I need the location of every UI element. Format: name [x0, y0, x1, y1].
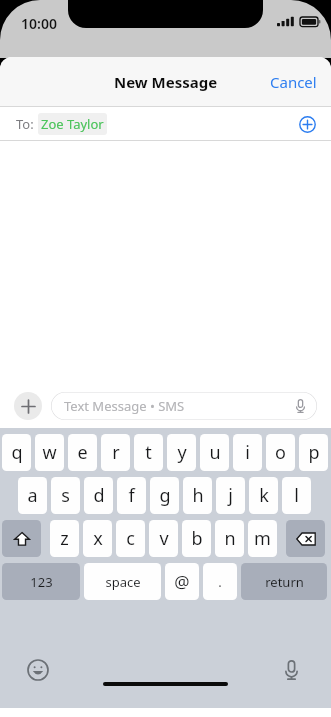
button[interactable]: . — [203, 563, 237, 600]
staticText: n — [224, 526, 236, 551]
staticText: q — [11, 440, 23, 465]
staticText: Cancel — [270, 72, 317, 92]
staticText: p — [308, 440, 320, 465]
button[interactable]: y — [167, 434, 196, 471]
button[interactable]: Backspace — [286, 520, 325, 557]
staticText: space — [105, 573, 141, 591]
staticText: 123 — [30, 573, 53, 591]
button[interactable]: q — [2, 434, 31, 471]
staticText: e — [77, 440, 88, 465]
button[interactable]: Zoe Taylor — [38, 113, 107, 135]
button[interactable]: Add contact — [292, 109, 322, 139]
staticText: Zoe Taylor — [41, 115, 104, 133]
staticText: r — [112, 440, 120, 465]
staticText: h — [192, 483, 204, 508]
staticText: i — [245, 440, 250, 465]
button[interactable]: @ — [165, 563, 199, 600]
staticText: . — [218, 573, 222, 591]
button[interactable]: Emoji — [24, 656, 52, 684]
button[interactable]: f — [117, 477, 146, 514]
staticText: t — [145, 440, 152, 465]
staticText: l — [294, 483, 299, 508]
staticText: New Message — [114, 72, 218, 92]
button[interactable]: Attach — [14, 392, 42, 420]
staticText: m — [254, 526, 271, 551]
button[interactable]: t — [134, 434, 163, 471]
staticText: u — [209, 440, 221, 465]
staticText: @ — [174, 570, 190, 593]
button[interactable]: Voice input — [277, 656, 305, 684]
button[interactable]: space — [84, 563, 161, 600]
staticText: z — [60, 526, 69, 551]
staticText: return — [265, 573, 304, 591]
button[interactable]: Shift — [2, 520, 41, 557]
staticText: c — [126, 526, 135, 551]
staticText: d — [93, 483, 105, 508]
button[interactable]: i — [233, 434, 262, 471]
staticText: j — [228, 483, 233, 508]
button[interactable]: u — [200, 434, 229, 471]
button[interactable]: 123 — [2, 563, 80, 600]
staticText: k — [259, 483, 269, 508]
staticText: 10:00 — [21, 14, 57, 33]
button[interactable]: r — [101, 434, 130, 471]
button[interactable]: Text Message • SMS — [51, 392, 317, 420]
staticText: v — [159, 526, 169, 551]
button[interactable]: k — [249, 477, 278, 514]
staticText: f — [128, 483, 135, 508]
button[interactable]: b — [182, 520, 211, 557]
button[interactable]: z — [50, 520, 79, 557]
button[interactable]: m — [248, 520, 277, 557]
staticText: s — [61, 483, 70, 508]
button[interactable]: c — [116, 520, 145, 557]
button[interactable]: Cancel — [256, 64, 331, 100]
button[interactable]: s — [51, 477, 80, 514]
staticText: b — [191, 526, 203, 551]
button[interactable]: n — [215, 520, 244, 557]
staticText: To: — [16, 115, 34, 133]
button[interactable]: x — [83, 520, 112, 557]
button[interactable]: h — [183, 477, 212, 514]
staticText: w — [42, 440, 57, 465]
button[interactable]: v — [149, 520, 178, 557]
button[interactable]: return — [241, 563, 327, 600]
button[interactable]: w — [35, 434, 64, 471]
button[interactable]: l — [282, 477, 311, 514]
button[interactable]: g — [150, 477, 179, 514]
staticText: a — [27, 483, 38, 508]
button[interactable]: o — [266, 434, 295, 471]
button[interactable]: Dictate — [290, 396, 310, 416]
staticText: y — [177, 440, 187, 465]
staticText: g — [159, 483, 171, 508]
button[interactable]: p — [299, 434, 328, 471]
button[interactable]: j — [216, 477, 245, 514]
button[interactable]: a — [18, 477, 47, 514]
staticText: x — [93, 526, 103, 551]
button[interactable]: d — [84, 477, 113, 514]
staticText: o — [275, 440, 286, 465]
staticText: Text Message • SMS — [64, 397, 185, 415]
button[interactable]: e — [68, 434, 97, 471]
